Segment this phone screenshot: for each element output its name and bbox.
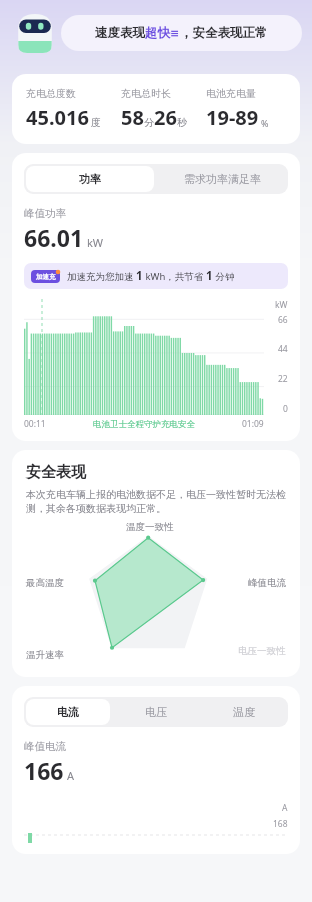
staticText: 45.016	[26, 104, 89, 131]
button[interactable]: 速度表现	[61, 15, 302, 51]
staticText: 电压	[145, 705, 167, 719]
staticText: 44	[278, 343, 288, 355]
button[interactable]: 加速充	[24, 263, 288, 289]
staticText: 00:11	[24, 418, 46, 430]
staticText: kW	[87, 235, 104, 250]
staticText: kWh，共节省	[143, 270, 206, 283]
staticText: 本次充电车辆上报的电池数据不足，电压一致性暂时无法检测，其余各项数据表现均正常。	[26, 488, 286, 515]
staticText: A	[282, 802, 288, 814]
staticText: 加速充	[36, 273, 56, 281]
staticText: 充电总时长	[121, 87, 171, 100]
button[interactable]: 功率	[26, 166, 154, 192]
staticText: 22	[278, 373, 288, 385]
staticText: 电压一致性	[238, 645, 286, 657]
staticText: 温升速率	[26, 649, 64, 661]
staticText: 功率	[79, 172, 101, 186]
staticText: 峰值电流	[248, 577, 286, 589]
staticText: 温度一致性	[126, 521, 174, 533]
staticText: 电流	[57, 705, 79, 719]
button[interactable]: 充电总度数	[12, 74, 300, 144]
button[interactable]: 电流	[26, 699, 110, 725]
staticText: 电池充电量	[206, 87, 256, 100]
staticText: 安全表现	[26, 463, 86, 482]
other: Assistant	[14, 8, 56, 58]
staticText: 速度表现	[95, 25, 145, 41]
staticText: 秒	[177, 116, 187, 129]
staticText: 166	[24, 755, 64, 786]
staticText: 66	[278, 314, 288, 326]
staticText: 电池卫士全程守护充电安全	[93, 419, 195, 430]
staticText: 19-89	[206, 104, 259, 131]
button[interactable]: 需求功率满足率	[158, 166, 286, 192]
staticText: 26	[154, 104, 177, 131]
staticText: 01:09	[242, 418, 264, 430]
staticText: %	[261, 117, 269, 129]
staticText: 最高温度	[26, 577, 64, 589]
staticText: 1	[206, 268, 213, 284]
staticText: ≡	[170, 27, 180, 40]
button[interactable]: 温度	[202, 699, 286, 725]
staticText: 温度	[233, 705, 255, 719]
staticText: 超快	[145, 25, 170, 41]
staticText: 168	[273, 818, 288, 830]
staticText: 需求功率满足率	[184, 172, 261, 186]
staticText: 58	[121, 104, 144, 131]
staticText: 66.01	[24, 222, 84, 253]
staticText: ，安全表现正常	[180, 25, 268, 41]
staticText: 度	[91, 116, 101, 129]
staticText: 分钟	[213, 270, 235, 283]
staticText: kW	[275, 299, 288, 311]
staticText: 峰值功率	[24, 207, 66, 220]
button[interactable]: 电压	[114, 699, 198, 725]
staticText: 0	[283, 403, 288, 415]
staticText: A	[67, 768, 75, 783]
staticText: 1	[136, 268, 143, 284]
staticText: 峰值电流	[24, 740, 66, 753]
staticText: 充电总度数	[26, 87, 76, 100]
staticText: 加速充为您加速	[67, 270, 136, 283]
staticText: 分	[144, 116, 154, 129]
